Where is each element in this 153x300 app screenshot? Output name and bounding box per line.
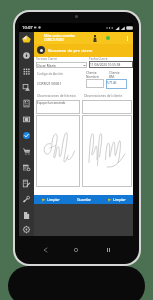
button[interactable]: More options <box>125 34 130 43</box>
staticText: CORR/21/00061 <box>37 81 62 85</box>
staticText: Fecha Cierre <box>89 57 108 61</box>
button[interactable]: Client signature <box>82 115 132 187</box>
staticText: 11/06/2020 10:55:58 <box>90 63 121 67</box>
button[interactable]: cart <box>19 143 34 159</box>
staticText: Resumen de pre cierre <box>48 48 93 54</box>
staticText: Limpiar <box>113 197 126 202</box>
button[interactable]: check <box>19 127 34 143</box>
button[interactable]: Account <box>91 34 99 43</box>
staticText: 10:07 <box>22 25 33 31</box>
button[interactable]: gear <box>19 223 34 236</box>
staticText: Equipo funcionando <box>37 101 66 105</box>
button[interactable]: Home <box>70 244 82 256</box>
button[interactable]: Back <box>39 244 51 256</box>
staticText: Editar accion correctiva <box>44 34 75 38</box>
button[interactable]: App logo <box>19 32 34 47</box>
staticText: Tecnico Cierre <box>36 57 57 61</box>
staticText: Observaciones del cliente <box>84 94 123 98</box>
button[interactable]: Technician signature <box>36 115 80 187</box>
staticText: Cliente BM: <box>109 71 120 79</box>
button[interactable]: Limpiar <box>100 195 133 204</box>
staticText: Cliente Nombre: <box>86 71 100 79</box>
button[interactable]: calendar <box>19 159 34 175</box>
button[interactable]: doc <box>19 207 34 223</box>
staticText: Limpiar <box>47 197 60 202</box>
staticText: Oscar Marin <box>37 63 83 67</box>
staticText: CORR/21/00061 <box>44 38 65 42</box>
staticText: Guardar <box>77 197 91 202</box>
staticText: Codigo de Acción <box>37 72 63 76</box>
staticText: Observaciones del técnico <box>37 94 77 98</box>
button[interactable]: grid <box>19 63 34 79</box>
button[interactable]: docedit <box>19 175 34 191</box>
button[interactable]: Limpiar <box>34 195 67 204</box>
button[interactable]: wrench <box>19 191 34 207</box>
button[interactable]: Sync status <box>104 34 112 42</box>
button[interactable]: Guardar <box>67 195 100 204</box>
button[interactable]: info <box>19 47 34 63</box>
button[interactable]: Section icon <box>37 46 45 54</box>
button[interactable]: Recent apps <box>102 244 114 256</box>
button[interactable]: box <box>19 111 34 127</box>
staticText: 57146 <box>107 80 117 84</box>
button[interactable]: list <box>19 95 34 111</box>
button[interactable]: image <box>19 79 34 95</box>
